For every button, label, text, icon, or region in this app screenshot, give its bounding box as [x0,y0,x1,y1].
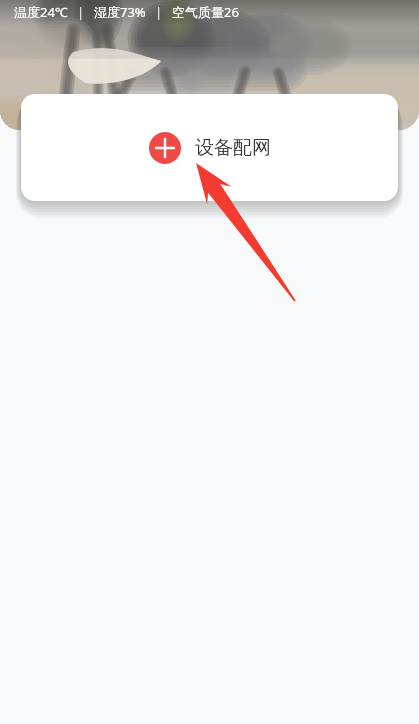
staticText: 温度24℃ [14,3,68,21]
other: Annotation arrow pointing at 设备配网 [0,0,419,724]
staticText: 空气质量26 [172,3,239,21]
staticText: | [77,3,85,21]
staticText: | [155,3,163,21]
staticText: 设备配网 [195,136,271,160]
staticText: 湿度73% [94,3,146,21]
button[interactable]: 设备配网 [21,94,398,201]
